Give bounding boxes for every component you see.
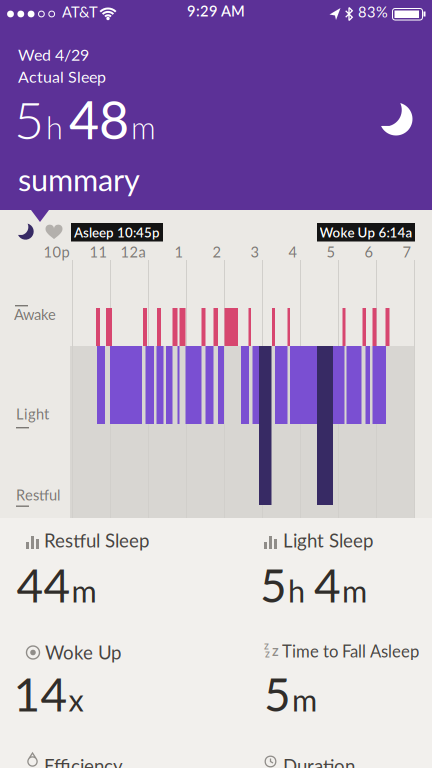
staticText: z [265, 647, 270, 660]
staticText: z [264, 639, 269, 652]
staticText: Awake [14, 305, 56, 323]
staticText: 11 [89, 243, 107, 261]
staticText: Asleep 10:45p [74, 224, 160, 240]
staticText: z [272, 641, 279, 659]
staticText: x [68, 681, 83, 718]
staticText: Restful Sleep [44, 529, 149, 551]
staticText: 12a [120, 243, 145, 261]
staticText: 7 [402, 243, 411, 261]
staticText: 5 [264, 666, 291, 721]
staticText: m [71, 572, 96, 609]
staticText: Wed 4/29 [18, 45, 89, 64]
staticText: Restful [16, 486, 60, 504]
staticText: m [342, 572, 367, 609]
staticText: 6 [364, 243, 373, 261]
staticText: Actual Sleep [18, 67, 106, 86]
staticText: 5 [14, 88, 44, 150]
staticText: AT&T [62, 3, 98, 21]
staticText: 4 [314, 557, 341, 612]
staticText: 44 [16, 557, 70, 612]
staticText: summary [18, 161, 140, 198]
staticText: 83% [358, 3, 388, 21]
staticText: Woke Up [45, 641, 121, 663]
button[interactable]: Sleep [18, 222, 34, 240]
staticText: 5 [260, 557, 287, 612]
staticText: 2 [212, 243, 221, 261]
staticText: Woke Up 6:14a [319, 224, 412, 240]
staticText: 5 [326, 243, 335, 261]
staticText: 3 [250, 243, 259, 261]
staticText: 10p [43, 243, 69, 261]
staticText: 14 [13, 666, 67, 721]
staticText: Light Sleep [283, 529, 373, 551]
staticText: h [288, 572, 313, 609]
staticText: Duration [283, 754, 355, 768]
staticText: 1 [174, 243, 183, 261]
staticText: Light [16, 405, 49, 423]
staticText: 4 [288, 243, 297, 261]
button[interactable]: summary [18, 161, 140, 198]
staticText: m [131, 109, 156, 146]
staticText: 9:29 AM [187, 2, 245, 20]
button[interactable]: Heart rate [45, 222, 63, 240]
staticText: 48 [69, 88, 129, 150]
staticText: m [292, 681, 317, 718]
staticText: h [46, 109, 63, 146]
staticText: Time to Fall Asleep [282, 641, 419, 661]
staticText: Efficiency [44, 754, 123, 768]
